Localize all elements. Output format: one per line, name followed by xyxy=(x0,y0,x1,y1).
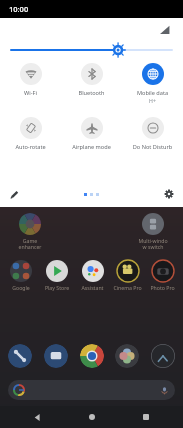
button[interactable]: Auto-rotate xyxy=(0,117,61,151)
button[interactable]: Play Store xyxy=(39,260,75,291)
staticText: Google xyxy=(3,284,39,291)
button[interactable]: Photo Pro xyxy=(145,260,180,291)
button[interactable]: Cinema Pro xyxy=(110,260,145,291)
staticText: Wi-Fi xyxy=(1,89,60,97)
button[interactable]: Settings xyxy=(161,186,177,202)
staticText: Airplane mode xyxy=(62,143,121,151)
staticText: Play Store xyxy=(39,284,75,291)
button[interactable]: Game enhancer xyxy=(8,213,52,250)
button[interactable] xyxy=(44,344,68,368)
button[interactable]: Assistant xyxy=(75,260,110,291)
staticText: Photo Pro xyxy=(145,284,180,291)
staticText: Bluetooth xyxy=(62,89,121,97)
staticText: Do Not Disturb xyxy=(123,143,182,151)
button[interactable] xyxy=(80,344,104,368)
button[interactable]: Do Not Disturb xyxy=(122,117,183,151)
button[interactable]: Google xyxy=(3,260,39,291)
button[interactable]: Edit xyxy=(6,186,22,202)
button[interactable]: Recents xyxy=(137,408,155,426)
staticText: 10:00 xyxy=(9,4,29,14)
staticText: H+ xyxy=(122,97,183,104)
button[interactable] xyxy=(8,380,175,400)
staticText: Game enhancer xyxy=(8,237,52,250)
button[interactable] xyxy=(115,344,139,368)
staticText: Assistant xyxy=(75,284,110,291)
button[interactable]: Back xyxy=(28,408,46,426)
staticText: Cinema Pro xyxy=(110,284,145,291)
button[interactable]: Wi-Fi xyxy=(0,63,61,97)
staticText: Multi-windo w switch xyxy=(131,237,175,250)
button[interactable]: Home xyxy=(83,408,101,426)
staticText: Mobile data xyxy=(123,89,182,97)
button[interactable]: Airplane mode xyxy=(61,117,122,151)
button[interactable] xyxy=(8,344,32,368)
button[interactable]: Mobile data xyxy=(122,63,183,104)
button[interactable] xyxy=(151,344,175,368)
button[interactable]: Bluetooth xyxy=(61,63,122,97)
button[interactable]: Multi-windo w switch xyxy=(131,213,175,250)
staticText: Auto-rotate xyxy=(1,143,60,151)
